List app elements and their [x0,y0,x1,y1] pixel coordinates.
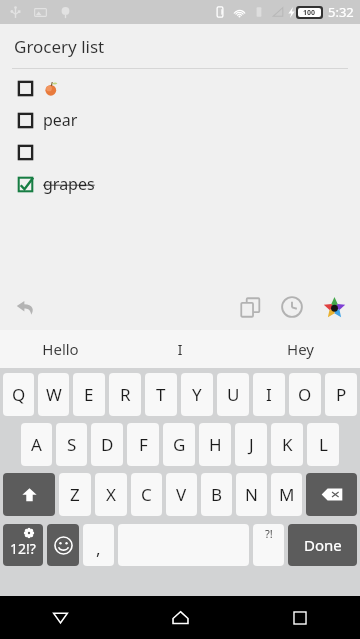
button[interactable]: I [120,330,240,368]
staticText: Hey [287,339,314,359]
button[interactable]: A [21,423,52,466]
staticText: U [227,383,240,406]
button[interactable]: Checked item [16,175,34,193]
button[interactable]: Done [288,524,357,566]
button[interactable]: S [56,423,87,466]
button[interactable]: W [38,373,69,416]
button[interactable]: I [253,373,285,416]
button[interactable]: N [236,473,267,516]
button[interactable]: Checked item [0,168,360,200]
staticText: T [156,383,166,406]
button[interactable]: Z [59,473,91,516]
staticText: S [67,433,77,456]
button[interactable]: R [109,373,141,416]
button[interactable]: O [289,373,321,416]
staticText: 5:32 [328,3,354,21]
button[interactable]: L [307,423,339,466]
staticText: Done [304,535,342,555]
staticText: R [120,383,131,406]
button[interactable]: F [127,423,159,466]
staticText: , [96,537,101,560]
button[interactable]: P [325,373,357,416]
button[interactable]: M [271,473,302,516]
button[interactable]: Unchecked item [0,104,360,136]
staticText: J [249,433,254,456]
button[interactable]: E [73,373,105,416]
staticText: 12!? [10,539,36,558]
staticText: H [209,433,222,456]
button[interactable]: Hey [240,330,360,368]
button[interactable]: Unchecked item [0,136,360,168]
button[interactable]: T [145,373,177,416]
button[interactable]: Undo [10,292,40,322]
button[interactable]: K [271,423,303,466]
button[interactable]: Backspace [306,473,357,516]
button[interactable]: J [235,423,267,466]
staticText: M [279,483,295,506]
button[interactable]: , [83,524,114,566]
staticText: F [139,433,148,456]
staticText: L [319,433,328,456]
staticText: K [282,433,293,456]
staticText: B [211,483,223,506]
staticText: I [177,339,183,359]
staticText: G [173,433,186,456]
staticText: 100 [303,8,316,17]
button[interactable]: U [217,373,249,416]
button[interactable]: Home [120,596,240,639]
staticText: P [336,383,347,406]
button[interactable]: Colour [319,292,349,322]
button[interactable]: Unchecked item [0,72,360,104]
button[interactable]: Back [0,596,120,639]
staticText: C [141,483,152,506]
staticText: Hello [42,339,79,359]
button[interactable]: B [201,473,232,516]
staticText: O [298,383,312,406]
staticText: I [266,383,272,406]
button[interactable]: G [163,423,195,466]
staticText: grapes [43,173,95,195]
button[interactable]: Emoji [47,524,79,566]
button[interactable]: Unchecked item [16,111,34,129]
staticText: V [176,483,187,506]
button[interactable]: Shift [3,473,55,516]
button[interactable]: Symbols and settings [3,524,43,566]
staticText: D [101,433,114,456]
button[interactable]: Q [3,373,34,416]
staticText: A [31,433,42,456]
staticText: X [106,483,116,506]
staticText: Z [70,483,80,506]
button[interactable]: ?! [253,524,284,566]
button[interactable]: Unchecked item [16,143,34,161]
staticText: N [245,483,258,506]
button[interactable]: D [91,423,123,466]
button[interactable]: C [131,473,162,516]
button[interactable]: Reminder [277,292,307,322]
button[interactable]: Recents [240,596,360,639]
staticText: E [84,383,94,406]
staticText: Y [192,383,202,406]
button[interactable]: X [95,473,127,516]
button[interactable]: Y [181,373,213,416]
staticText: Grocery list [14,35,105,58]
staticText: Q [12,383,26,406]
staticText: W [46,383,62,406]
staticText: pear [43,109,78,131]
button[interactable]: Unchecked item [16,79,34,97]
staticText: ?! [265,526,273,541]
button[interactable]: Hello [0,330,120,368]
button[interactable]: V [166,473,197,516]
button[interactable]: Copy [235,292,265,322]
button[interactable]: H [199,423,231,466]
